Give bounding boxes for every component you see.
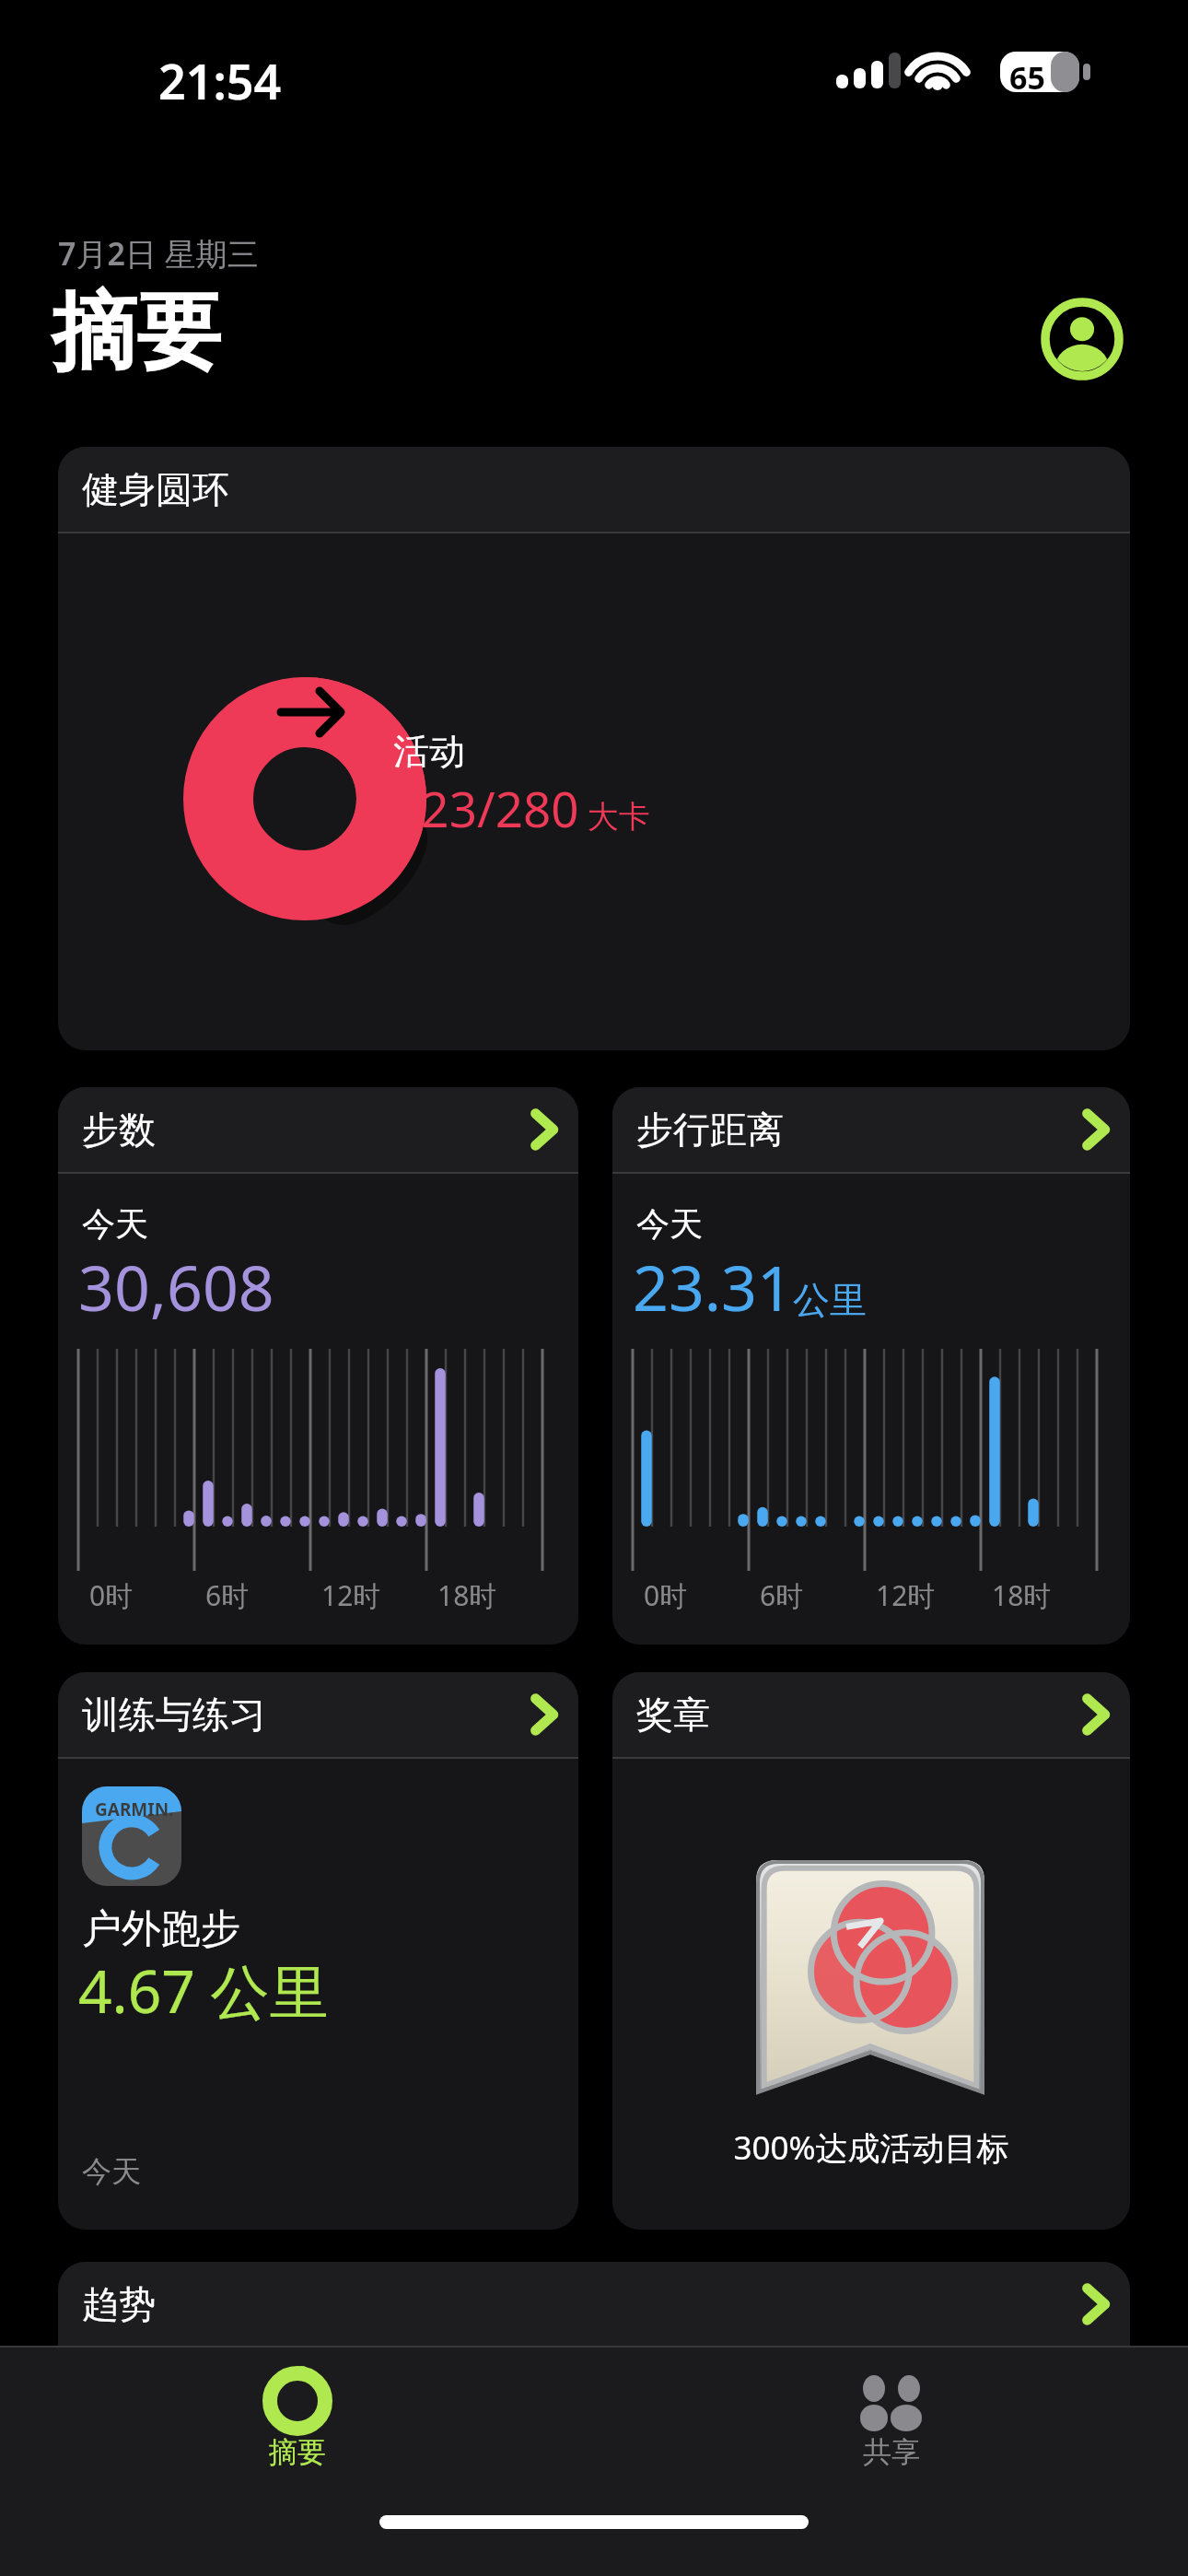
staticText: 4.67 公里 xyxy=(78,1950,329,2031)
staticText: 趋势 xyxy=(82,2281,156,2327)
staticText: 步行距离 xyxy=(636,1107,784,1153)
staticText: 300%达成活动目标 xyxy=(733,2125,1009,2170)
staticText: 30,608 xyxy=(78,1244,274,1329)
staticText: 12时 xyxy=(321,1576,381,1614)
staticText: 6时 xyxy=(205,1576,250,1614)
button[interactable]: 健身圆环 xyxy=(58,447,1130,1050)
staticText: 0时 xyxy=(89,1576,134,1614)
staticText: 7月2日 星期三 xyxy=(58,232,259,275)
button[interactable]: 训练与练习 xyxy=(58,1672,578,2230)
staticText: 6时 xyxy=(760,1576,804,1614)
staticText: 65 xyxy=(1009,56,1045,99)
staticText: 步数 xyxy=(82,1107,156,1153)
button[interactable]: Profile xyxy=(1041,298,1124,381)
staticText: 18时 xyxy=(437,1576,497,1614)
staticText: 21:54 xyxy=(158,48,282,113)
staticText: 23.31 xyxy=(633,1244,793,1329)
staticText: 摘要 xyxy=(52,279,221,386)
staticText: 18时 xyxy=(992,1576,1052,1614)
button[interactable]: 奖章 xyxy=(612,1672,1130,2230)
staticText: 今天 xyxy=(82,2153,141,2190)
button[interactable]: 步行距离 xyxy=(612,1087,1130,1645)
staticText: 今天 xyxy=(636,1203,703,1245)
button[interactable]: 摘要 xyxy=(0,2348,594,2506)
staticText: 大卡 xyxy=(579,794,650,837)
staticText: 共享 xyxy=(863,2434,920,2470)
staticText: 923/280 xyxy=(393,775,579,841)
staticText: GARMIN. xyxy=(95,1797,174,1821)
staticText: 公里 xyxy=(793,1277,867,1323)
staticText: 0时 xyxy=(644,1576,688,1614)
staticText: 活动 xyxy=(393,729,465,774)
staticText: 奖章 xyxy=(636,1692,710,1738)
staticText: 户外跑步 xyxy=(82,1904,240,1954)
button[interactable]: 共享 xyxy=(594,2348,1188,2506)
staticText: 摘要 xyxy=(269,2434,326,2470)
button[interactable]: 步数 xyxy=(58,1087,578,1645)
staticText: 健身圆环 xyxy=(82,466,229,512)
staticText: 今天 xyxy=(82,1203,148,1245)
button[interactable]: 趋势 xyxy=(58,2262,1130,2538)
staticText: 12时 xyxy=(876,1576,936,1614)
staticText: 训练与练习 xyxy=(82,1692,266,1738)
